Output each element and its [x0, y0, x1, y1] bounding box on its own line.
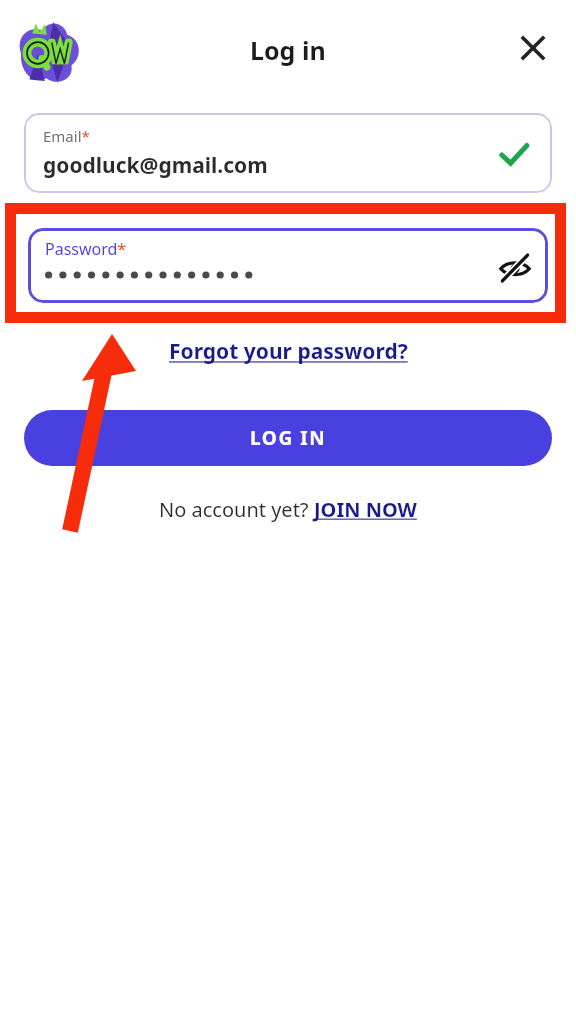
button[interactable]: Password*	[28, 228, 548, 303]
button[interactable]: JOIN NOW	[314, 496, 417, 523]
staticText: Email*	[43, 126, 90, 146]
staticText: JOIN NOW	[314, 496, 417, 523]
staticText: No account yet?	[159, 496, 314, 523]
button[interactable]: Close	[509, 24, 557, 72]
button[interactable]: Email*	[24, 113, 552, 193]
staticText: Log in	[250, 33, 326, 67]
button[interactable]: Show password	[492, 245, 538, 291]
button[interactable]: LOG IN	[24, 410, 552, 466]
button[interactable]: Forgot your password?	[163, 335, 414, 368]
staticText: Forgot your password?	[169, 337, 408, 366]
staticText: LOG IN	[250, 425, 327, 451]
staticText: Password*	[45, 238, 127, 260]
button[interactable]: App logo	[14, 18, 84, 88]
staticText: goodluck@gmail.com	[43, 151, 268, 180]
